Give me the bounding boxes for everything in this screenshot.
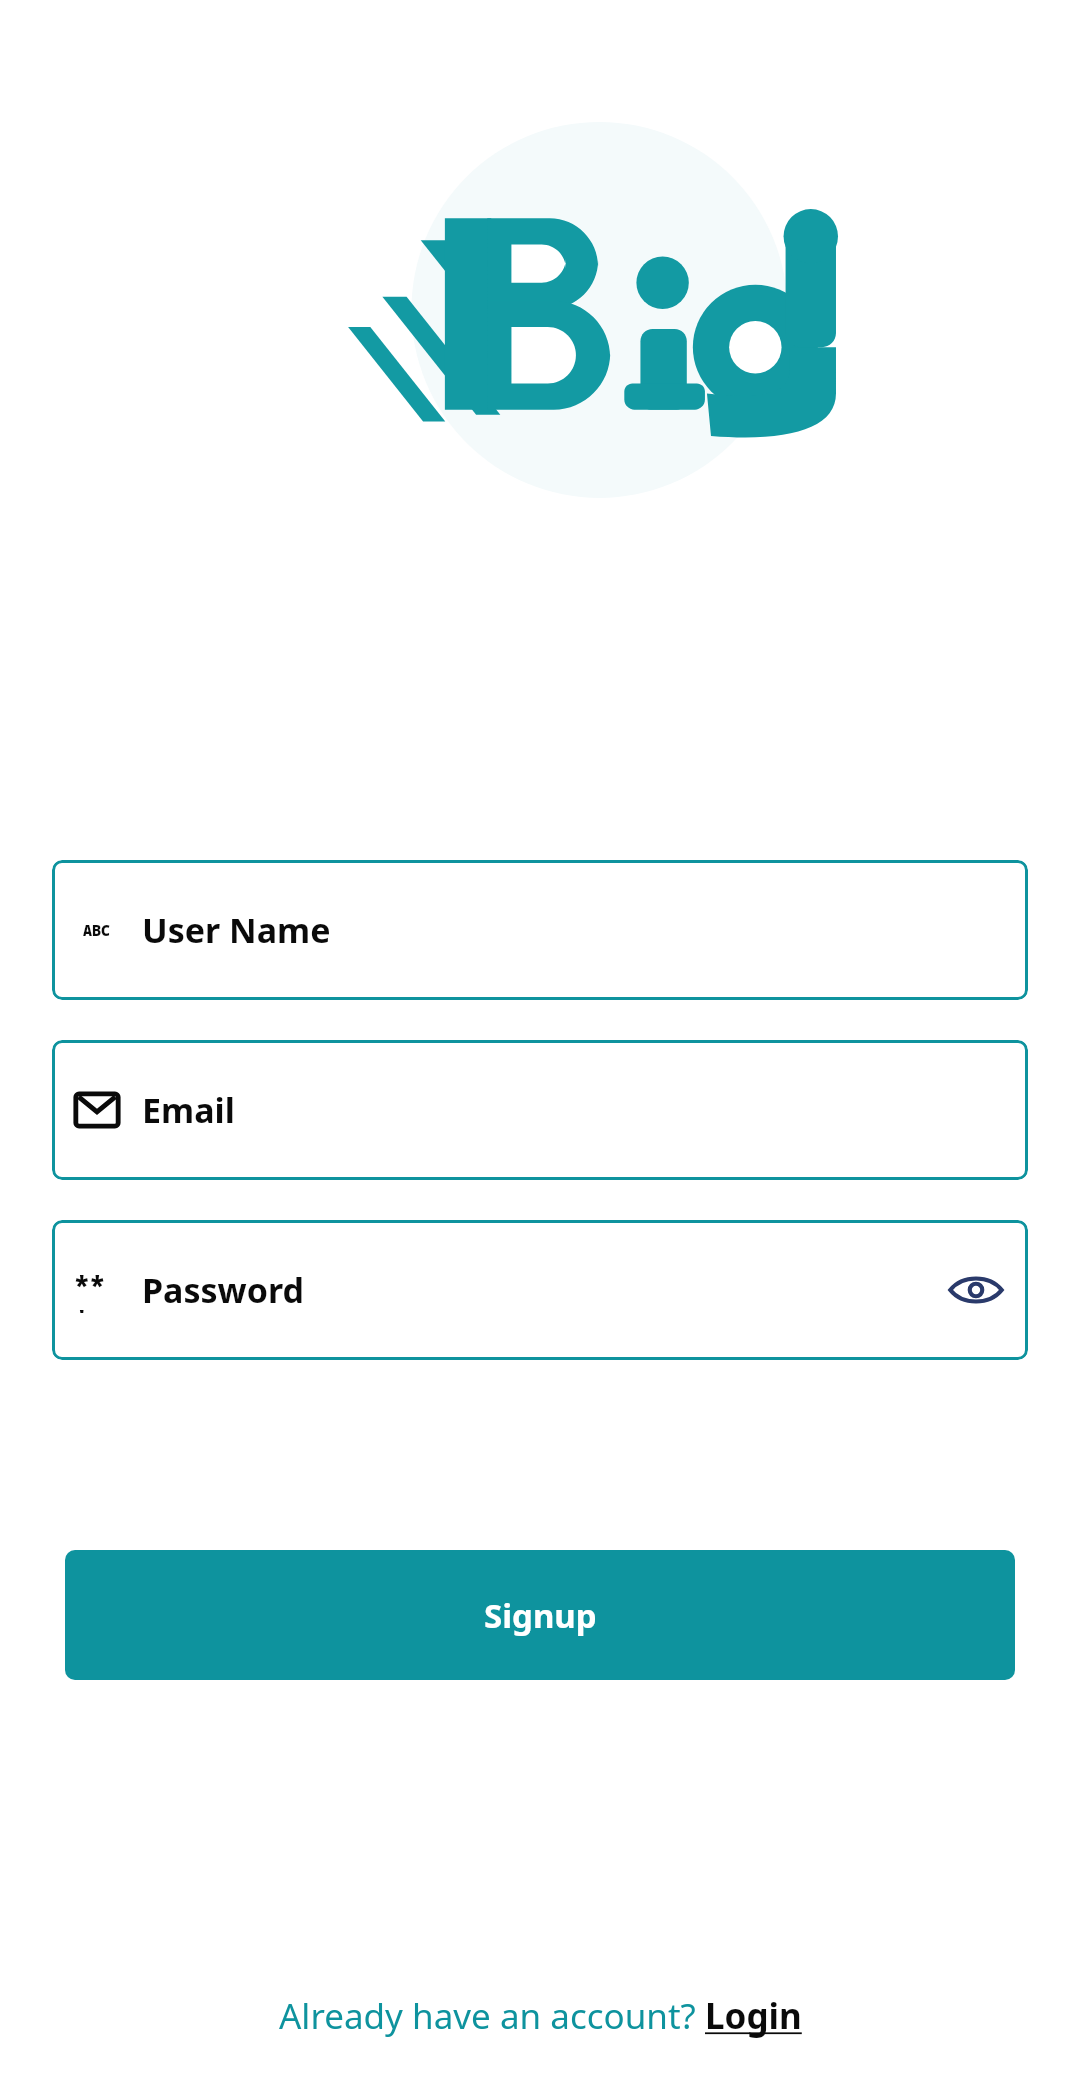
staticText: Login <box>705 1992 802 2040</box>
staticText: *** <box>74 1267 120 1313</box>
button[interactable]: ABC <box>52 860 1028 1000</box>
staticText: Signup <box>484 1593 597 1638</box>
staticText: ABC <box>83 920 111 940</box>
button[interactable]: Email <box>52 1040 1028 1180</box>
staticText: User Name <box>142 907 1006 953</box>
staticText: Password <box>142 1267 934 1313</box>
button[interactable]: *** <box>52 1220 1028 1360</box>
staticText: Email <box>142 1087 1006 1133</box>
button[interactable]: Show password <box>946 1260 1006 1320</box>
staticText: Already have an account? <box>279 1992 705 2040</box>
button[interactable]: Signup <box>65 1550 1015 1680</box>
button[interactable]: Already have an account? <box>271 1986 810 2046</box>
